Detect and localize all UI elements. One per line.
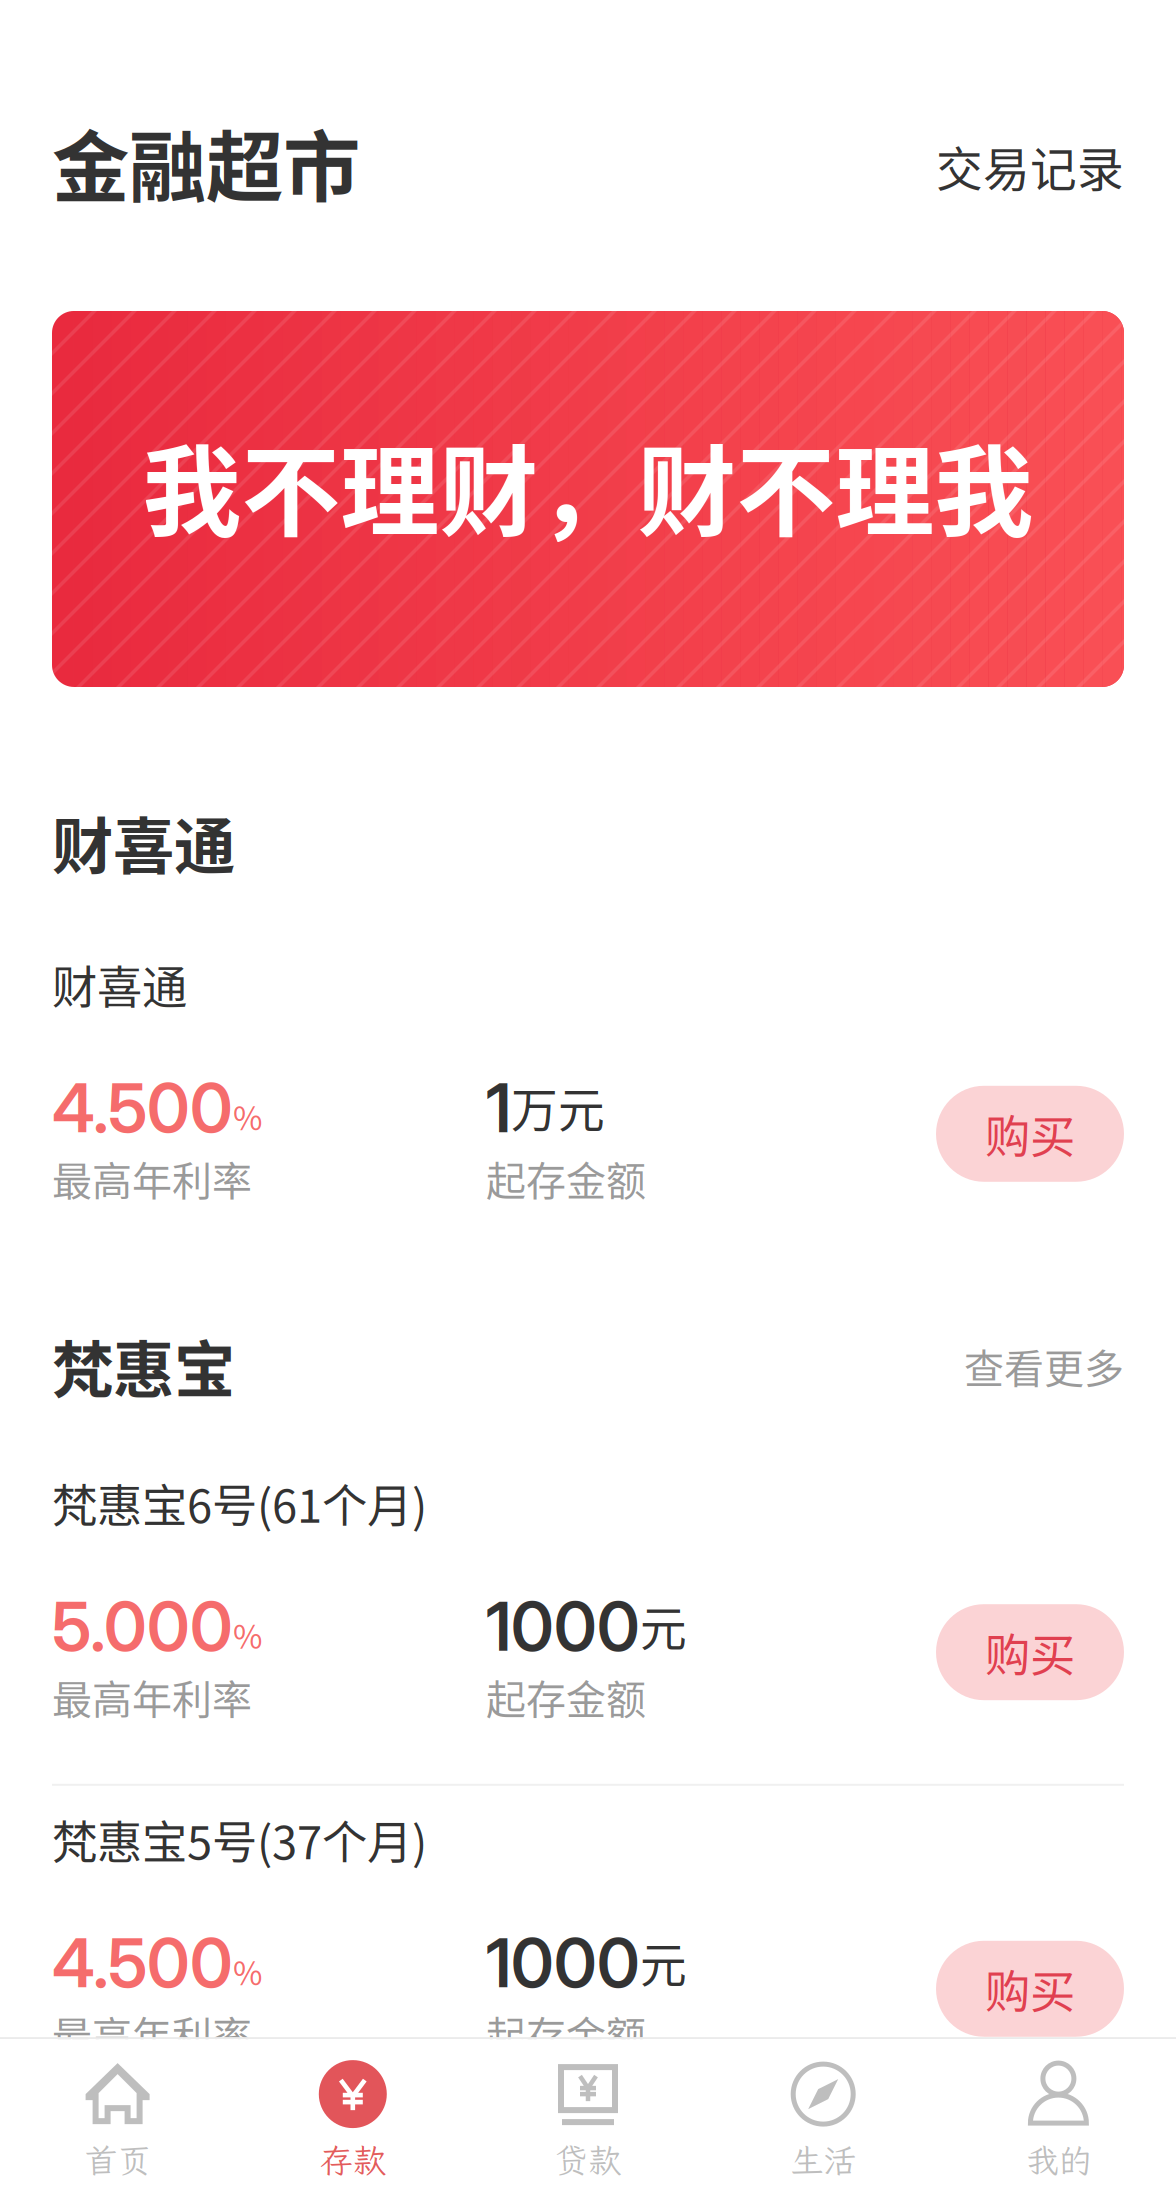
staticText: 购买 [985,1619,1075,1685]
staticText: 存款 [320,2138,386,2182]
staticText: 元 [640,1928,687,1995]
staticText: 最高年利率 [52,1149,252,1207]
staticText: 梵惠宝6号(61个月) [52,1470,427,1536]
staticText: 起存金额 [486,1668,646,1726]
staticText: 财喜通 [52,798,235,887]
staticText: 梵惠宝 [52,1321,235,1410]
button[interactable]: 查看更多 [964,1337,1124,1395]
staticText: 我的 [1025,2138,1091,2182]
staticText: 首页 [85,2138,151,2182]
staticText: % [233,1611,262,1658]
staticText: 4.500 [52,1068,233,1148]
staticText: 我不理财，财不理我 [142,413,1033,556]
staticText: 起存金额 [486,1149,646,1207]
staticText: 贷款 [555,2138,621,2182]
button[interactable]: 购买 [936,1941,1124,2037]
staticText: 金融超市 [52,106,360,218]
staticText: 万元 [511,1073,605,1140]
staticText: 最高年利率 [52,2004,252,2062]
staticText: 查看更多 [964,1337,1124,1395]
button[interactable]: 购买 [936,1086,1124,1182]
staticText: 购买 [985,1956,1075,2021]
staticText: 交易记录 [936,132,1124,200]
staticText: 元 [640,1591,687,1659]
staticText: 生活 [790,2138,856,2182]
staticText: 1000 [486,1923,640,2003]
button[interactable]: 我的 [941,2039,1176,2204]
staticText: 最高年利率 [52,1668,252,1726]
button[interactable]: 存款 [235,2039,470,2204]
button[interactable]: 购买 [936,1604,1124,1700]
staticText: % [233,1093,262,1139]
staticText: 购买 [985,1101,1075,1167]
staticText: 4.500 [52,1923,233,2003]
staticText: % [233,1948,262,1994]
staticText: 梵惠宝5号(37个月) [52,1807,427,1872]
button[interactable]: 交易记录 [936,124,1124,200]
staticText: 5.000 [52,1586,233,1667]
staticText: 1000 [486,1586,640,1667]
staticText: 财喜通 [52,952,187,1017]
button[interactable]: 生活 [706,2039,941,2204]
staticText: 起存金额 [486,2004,646,2062]
staticText: 1 [486,1068,511,1148]
button[interactable]: 首页 [0,2039,235,2204]
button[interactable]: 贷款 [470,2039,706,2204]
